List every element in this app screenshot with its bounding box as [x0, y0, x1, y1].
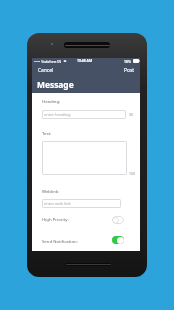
button[interactable]: High Priority toggle — [112, 216, 124, 224]
staticText: 160 — [129, 171, 135, 176]
button[interactable]: enter heading — [42, 110, 126, 119]
staticText: Heading: — [42, 98, 61, 104]
button[interactable]: Cancel — [38, 67, 54, 74]
staticText: 10% — [124, 59, 131, 64]
staticText: 30 — [129, 112, 133, 117]
button[interactable]: enter web link — [42, 199, 121, 208]
staticText: Cancel — [38, 67, 54, 74]
staticText: Post — [124, 67, 135, 74]
staticText: enter heading — [44, 112, 71, 117]
button[interactable] — [42, 141, 127, 175]
staticText: Message — [37, 79, 74, 90]
staticText: High Priority: — [42, 216, 69, 222]
staticText: ••••• Vodafone IN — [34, 59, 62, 64]
staticText: Send Notification: — [42, 238, 78, 244]
staticText: enter web link — [44, 201, 71, 206]
staticText: Text: — [42, 130, 52, 136]
button[interactable]: Post — [124, 67, 135, 74]
staticText: 10:48 AM — [77, 58, 93, 63]
button[interactable]: Send Notification toggle — [112, 236, 124, 244]
staticText: Weblink: — [42, 188, 60, 194]
